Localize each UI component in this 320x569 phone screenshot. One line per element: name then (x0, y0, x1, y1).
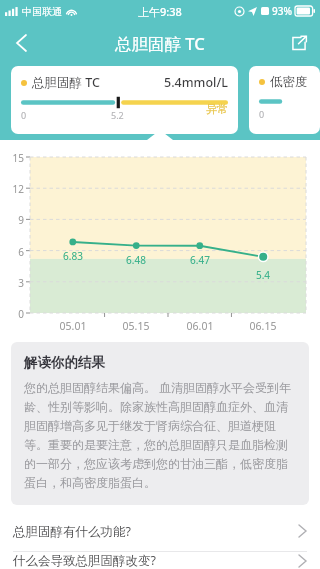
staticText: 中国联通 (22, 5, 62, 18)
staticText: 06.01 (178, 319, 222, 333)
staticText: 0 (2, 307, 24, 321)
staticText: 0 (21, 109, 27, 121)
button[interactable]: 低密度脂蛋 (249, 66, 320, 134)
button[interactable]: 什么会导致总胆固醇改变? (0, 552, 320, 569)
staticText: 05.15 (114, 319, 158, 333)
staticText: 异常 (206, 102, 228, 116)
staticText: 3 (2, 276, 24, 290)
button[interactable]: 总胆固醇 TC (11, 66, 238, 134)
staticText: 总胆固醇有什么功能? (13, 523, 131, 540)
staticText: 6 (2, 245, 24, 259)
staticText: 低密度脂蛋 (270, 74, 310, 90)
staticText: 6.83 (56, 249, 90, 263)
button[interactable]: 总胆固醇有什么功能? (0, 511, 320, 551)
staticText: 6.47 (183, 253, 217, 267)
staticText: 上午9:38 (138, 4, 182, 19)
staticText: 05.01 (51, 319, 95, 333)
staticText: 0 (259, 108, 265, 120)
staticText: 9 (2, 213, 24, 227)
staticText: 15 (2, 151, 24, 165)
button[interactable]: Share (278, 22, 320, 64)
staticText: 总胆固醇 TC (32, 74, 100, 91)
staticText: 93% (272, 4, 292, 18)
button[interactable]: Back (0, 22, 42, 64)
staticText: 什么会导致总胆固醇改变? (13, 552, 156, 569)
staticText: 解读你的结果 (24, 354, 105, 371)
staticText: 5.4 (246, 268, 280, 282)
staticText: 您的总胆固醇结果偏高。 血清胆固醇水平会受到年龄、性别等影响。除家族性高胆固醇血… (24, 379, 296, 491)
staticText: 6.48 (119, 253, 153, 267)
staticText: 5.2 (111, 109, 124, 121)
staticText: 5.4mmol/L (164, 74, 228, 91)
staticText: 06.15 (241, 319, 285, 333)
staticText: 12 (2, 182, 24, 196)
staticText: 总胆固醇 TC (115, 32, 205, 55)
